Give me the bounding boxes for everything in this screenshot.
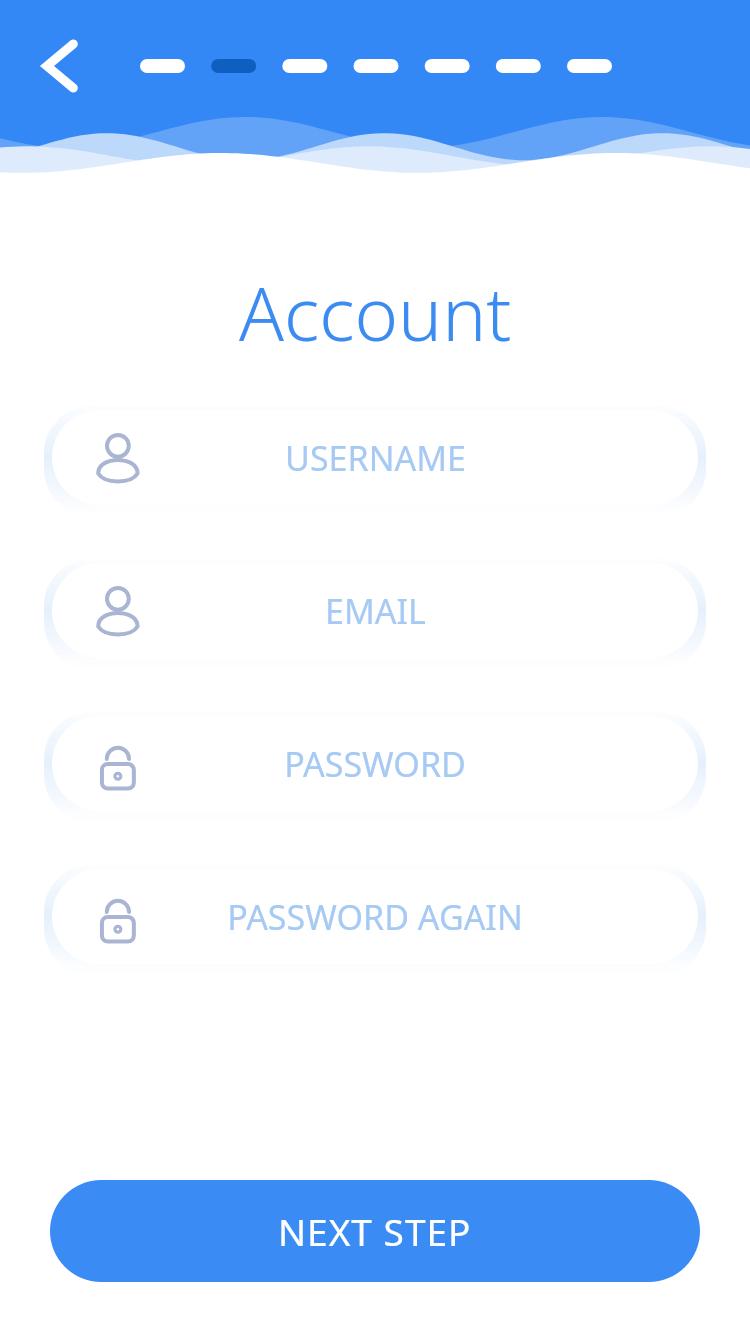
staticText: PASSWORD <box>284 741 466 787</box>
staticText: EMAIL <box>325 588 426 634</box>
button[interactable]: USERNAME <box>52 410 698 505</box>
button[interactable]: Back <box>25 30 97 102</box>
button[interactable]: EMAIL <box>52 563 698 658</box>
button[interactable]: NEXT STEP <box>50 1180 700 1282</box>
button[interactable]: PASSWORD AGAIN <box>52 869 698 964</box>
staticText: Account <box>239 262 512 363</box>
staticText: USERNAME <box>285 435 466 481</box>
staticText: NEXT STEP <box>278 1206 472 1256</box>
staticText: PASSWORD AGAIN <box>227 894 523 940</box>
button[interactable]: PASSWORD <box>52 716 698 811</box>
